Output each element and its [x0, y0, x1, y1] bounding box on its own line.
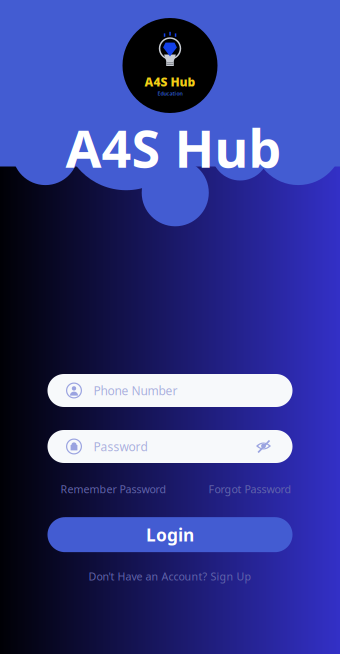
staticText: A4S Hub: [65, 113, 281, 182]
staticText: Password: [93, 438, 147, 454]
staticText: Forgot Password: [208, 482, 291, 496]
button[interactable]: Phone Number: [47, 374, 292, 407]
button[interactable]: Login: [47, 517, 292, 552]
button[interactable]: Password: [47, 430, 292, 463]
staticText: Education: [157, 90, 182, 97]
staticText: Login: [146, 523, 194, 546]
button[interactable]: Forgot Password: [208, 482, 291, 496]
button[interactable]: Don't Have an Account? Sign Up: [88, 569, 251, 583]
button[interactable]: Remember Password: [60, 482, 166, 496]
staticText: Phone Number: [93, 382, 177, 398]
staticText: A4S Hub: [144, 74, 195, 90]
staticText: Don't Have an Account? Sign Up: [88, 569, 251, 583]
button[interactable]: Show password: [255, 438, 271, 454]
staticText: Remember Password: [60, 482, 166, 496]
